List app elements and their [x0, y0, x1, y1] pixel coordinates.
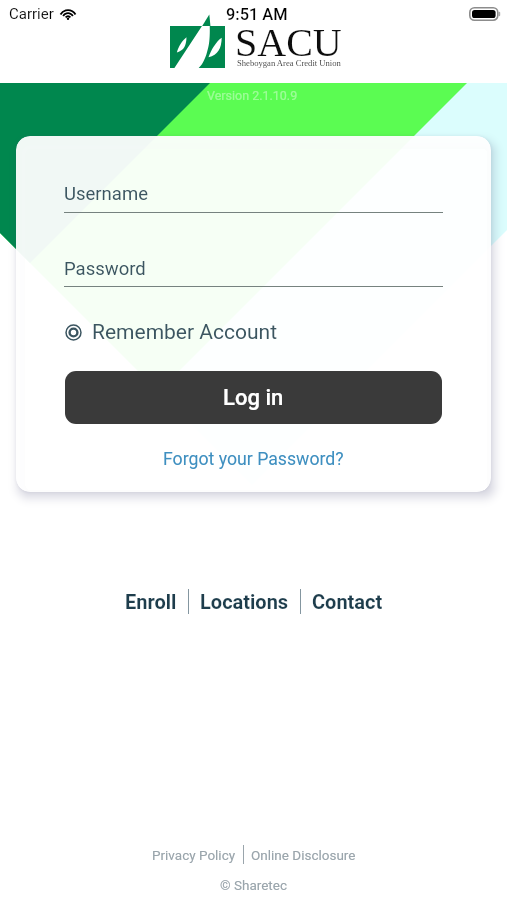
staticText: Enroll	[125, 590, 177, 613]
button[interactable]: Online Disclosure	[251, 847, 356, 863]
button[interactable]: Enroll	[123, 590, 179, 613]
staticText: SACU	[235, 20, 342, 64]
staticText: Password	[64, 258, 146, 280]
staticText: Version 2.1.10.9	[207, 88, 298, 103]
staticText: Remember Account	[92, 320, 278, 344]
staticText: Contact	[312, 590, 383, 613]
button[interactable]: Forgot your Password?	[163, 449, 344, 470]
staticText: Log in	[223, 385, 284, 411]
staticText: © Sharetec	[220, 877, 287, 893]
button[interactable]: Log in	[65, 371, 442, 424]
staticText: 9:51 AM	[226, 5, 288, 24]
staticText: Carrier	[9, 5, 54, 23]
button[interactable]: Locations	[198, 590, 291, 613]
button[interactable]: Remember Account	[65, 320, 278, 344]
button[interactable]: Contact	[310, 590, 385, 613]
staticText: Sheboygan Area Credit Union	[237, 58, 341, 68]
staticText: Locations	[200, 590, 289, 613]
button[interactable]: Privacy Policy	[152, 847, 236, 863]
staticText: Username	[64, 183, 148, 205]
